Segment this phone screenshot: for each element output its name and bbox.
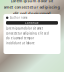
staticText: Continue xyxy=(25,21,39,25)
staticText: amet consectetur adipiscing xyxy=(3,4,60,10)
staticText: do eiusmod tempor xyxy=(6,36,34,40)
staticText: elit sed do eiusmod xyxy=(13,11,51,16)
staticText: consectetur adipiscing elit sed xyxy=(6,32,49,35)
button[interactable]: Continue xyxy=(6,21,58,25)
staticText: incididunt ut labore xyxy=(6,41,35,45)
staticText: Author name xyxy=(10,16,28,19)
staticText: Lorem ipsum dolor sit xyxy=(10,0,53,3)
staticText: Lorem ipsum dolor sit amet xyxy=(6,27,43,30)
